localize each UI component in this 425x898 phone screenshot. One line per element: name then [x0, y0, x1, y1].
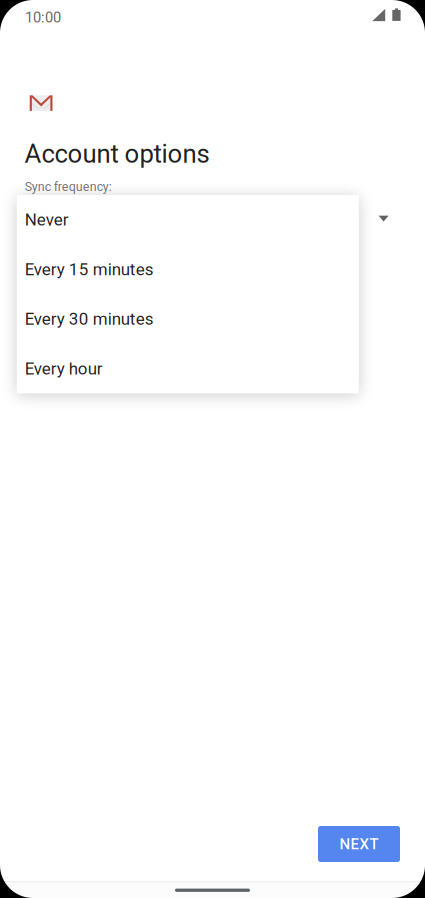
staticText: Every 15 minutes: [25, 259, 154, 279]
button[interactable]: Sync frequency: [362, 196, 406, 240]
staticText: NEXT: [339, 835, 378, 853]
staticText: Every hour: [25, 359, 103, 378]
button[interactable]: NEXT: [318, 826, 400, 862]
button[interactable]: Never: [17, 195, 359, 245]
staticText: 10:00: [25, 9, 61, 26]
button[interactable]: Every 30 minutes: [17, 294, 359, 344]
staticText: Sync frequency:: [25, 179, 112, 194]
button[interactable]: Every hour: [17, 344, 359, 393]
staticText: Never: [25, 210, 69, 230]
button[interactable]: Every 15 minutes: [17, 245, 359, 294]
staticText: Every 30 minutes: [25, 309, 154, 329]
staticText: Account options: [25, 139, 210, 169]
